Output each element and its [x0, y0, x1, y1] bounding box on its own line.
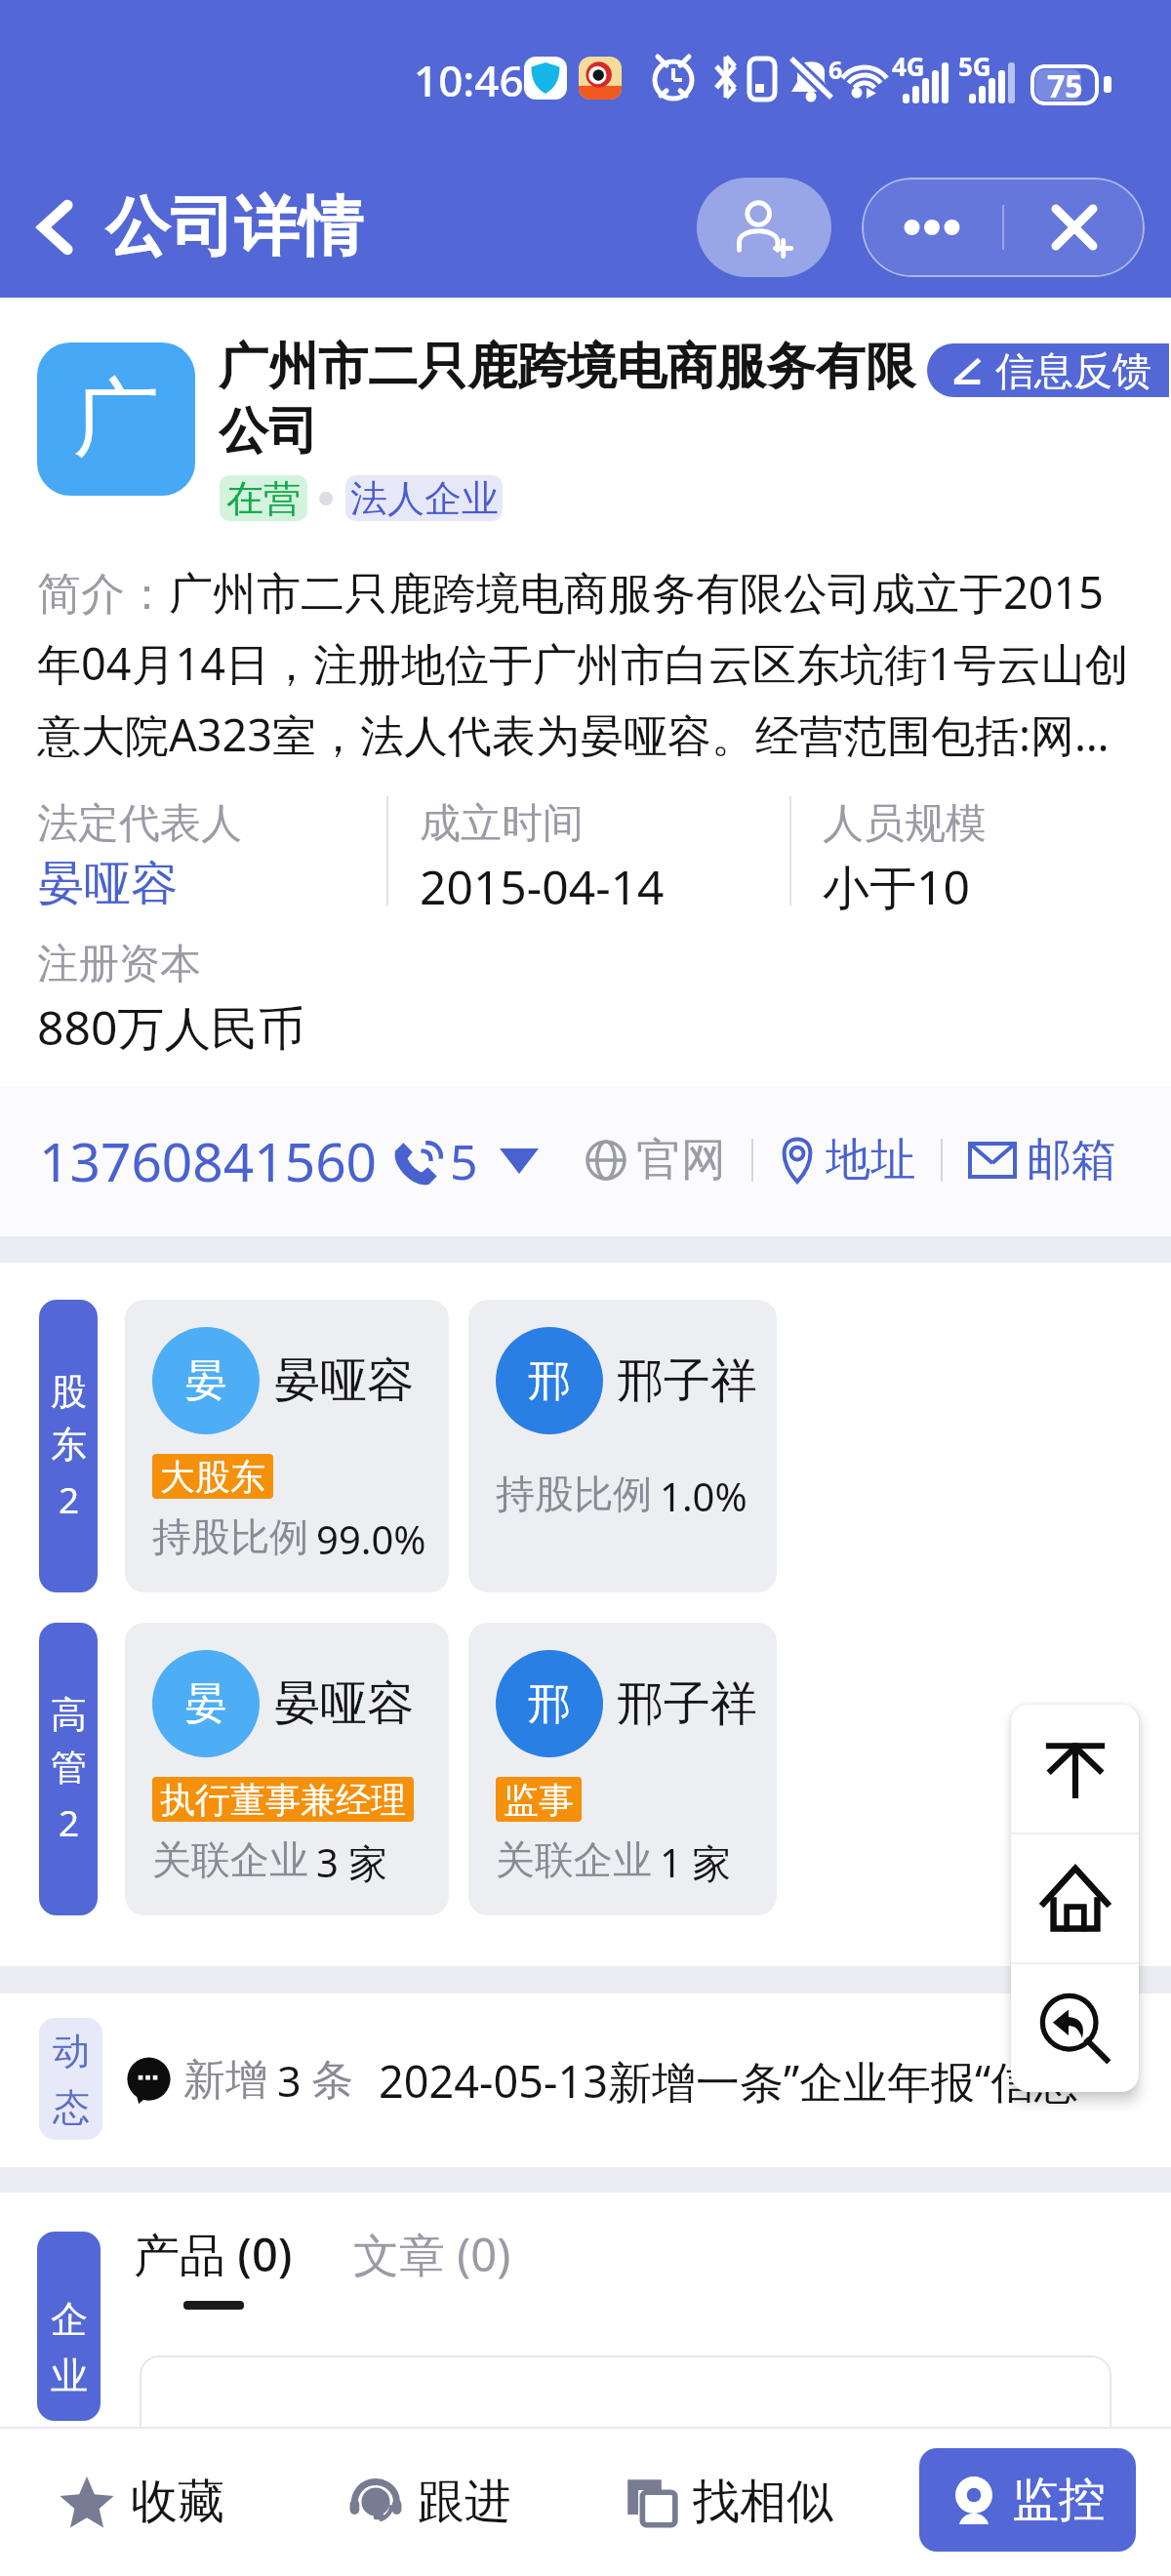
staticText: 跟进 [418, 2473, 511, 2531]
staticText: 大股东 [160, 1455, 265, 1499]
staticText: 5 [450, 1128, 478, 1194]
staticText: 产品 (0) [134, 2223, 293, 2285]
button[interactable]: 晏哑容 [37, 855, 178, 913]
button[interactable]: 在营 [220, 475, 307, 521]
staticText: 收藏 [131, 2473, 224, 2531]
staticText: 简介：广州市二只鹿跨境电商服务有限公司成立于2015年04月14日，注册地位于广… [37, 562, 1146, 764]
staticText: 新增 [183, 2054, 267, 2107]
button[interactable]: Home [1011, 1834, 1139, 1962]
staticText: 关联企业 [496, 1835, 652, 1884]
button[interactable]: 信息反馈 [927, 343, 1169, 397]
staticText: 关联企业 [152, 1835, 308, 1884]
staticText: 邮箱 [1027, 1132, 1116, 1188]
button[interactable]: 跟进 [349, 2473, 511, 2531]
staticText: 管 [51, 1745, 87, 1791]
button[interactable]: 找相似 [625, 2473, 833, 2531]
staticText: 注册资本 [37, 939, 201, 990]
button[interactable]: 新增 [126, 2043, 1079, 2117]
staticText: 1.0% [660, 1469, 747, 1522]
staticText: 企 [51, 2296, 88, 2343]
button[interactable]: 法人企业 [345, 475, 503, 521]
staticText: 找相似 [693, 2473, 833, 2531]
staticText: 业 [51, 2353, 88, 2399]
staticText: 3 家 [316, 1835, 388, 1889]
button[interactable]: 13760841560 [39, 1124, 539, 1197]
staticText: 在营 [226, 475, 301, 521]
staticText: 75 [1047, 64, 1083, 105]
button[interactable]: 监控 [919, 2448, 1136, 2552]
staticText: 880万人民币 [37, 995, 305, 1060]
button[interactable]: 文章 (0) [353, 2223, 511, 2285]
staticText: 2 [59, 1797, 80, 1846]
staticText: 法定代表人 [37, 798, 242, 850]
staticText: 监事 [504, 1778, 574, 1822]
staticText: 信息反馈 [995, 346, 1151, 395]
button[interactable]: 晏 [125, 1300, 449, 1592]
button[interactable]: 企 [37, 2232, 101, 2421]
staticText: 监控 [1012, 2471, 1106, 2529]
staticText: 晏 [184, 1354, 227, 1408]
staticText: 晏哑容 [273, 1351, 414, 1410]
staticText: 10:46 [414, 51, 524, 103]
button[interactable]: More options [862, 178, 1002, 277]
staticText: 6 [828, 53, 843, 86]
staticText: 持股比例 [496, 1469, 652, 1518]
staticText: 2 [59, 1474, 80, 1523]
staticText: 地址 [826, 1132, 915, 1188]
staticText: 邢子祥 [617, 1351, 757, 1410]
button[interactable]: 收藏 [59, 2473, 224, 2531]
staticText: 动 [53, 2028, 90, 2074]
button[interactable]: 官网 [585, 1132, 726, 1188]
staticText: 4G [892, 49, 925, 83]
button[interactable]: 邢 [468, 1623, 777, 1915]
staticText: 人员规模 [823, 798, 987, 850]
staticText: 条 [311, 2054, 353, 2107]
staticText: 2015-04-14 [420, 855, 665, 918]
staticText: 小于10 [823, 855, 970, 919]
staticText: 公司详情 [105, 186, 363, 267]
staticText: 文章 (0) [353, 2223, 511, 2285]
staticText: 邢 [528, 1354, 571, 1408]
button[interactable]: 晏 [125, 1623, 449, 1915]
button[interactable]: 邢 [468, 1300, 777, 1592]
staticText: 2024-05-13新增一条”企业年报“信息 [379, 2051, 1079, 2111]
staticText: 东 [51, 1422, 87, 1468]
staticText: 晏 [184, 1677, 227, 1731]
staticText: 高 [51, 1692, 87, 1738]
staticText: 邢子祥 [617, 1674, 757, 1733]
button[interactable]: 邮箱 [968, 1132, 1116, 1188]
button[interactable]: 股 [39, 1300, 98, 1592]
staticText: 态 [53, 2084, 90, 2131]
button[interactable]: Close [1004, 178, 1145, 277]
staticText: 13760841560 [39, 1124, 378, 1197]
staticText: 3 [277, 2052, 302, 2110]
staticText: 执行董事兼经理 [160, 1778, 406, 1822]
staticText: 股 [51, 1369, 87, 1415]
staticText: 官网 [636, 1132, 726, 1188]
staticText: 邢 [528, 1677, 571, 1731]
staticText: 1 家 [660, 1835, 732, 1889]
staticText: 广 [73, 365, 159, 473]
button[interactable]: 高 [39, 1623, 98, 1915]
button[interactable]: 产品 (0) [134, 2223, 293, 2310]
button[interactable]: Back [18, 156, 90, 298]
staticText: 成立时间 [420, 798, 584, 850]
staticText: 晏哑容 [273, 1674, 414, 1733]
button[interactable]: 动 [39, 2018, 102, 2140]
button[interactable]: Add contact [697, 178, 831, 277]
button[interactable]: Company logo [37, 342, 195, 496]
button[interactable]: Scroll to top [1011, 1705, 1139, 1832]
button[interactable]: 地址 [779, 1132, 915, 1188]
staticText: 持股比例 [152, 1512, 308, 1561]
staticText: 5G [958, 49, 991, 83]
staticText: 99.0% [316, 1512, 426, 1565]
button[interactable]: Search history [1011, 1964, 1139, 2092]
staticText: 广州市二只鹿跨境电商服务有限公司 [219, 336, 923, 463]
staticText: 法人企业 [350, 475, 499, 521]
